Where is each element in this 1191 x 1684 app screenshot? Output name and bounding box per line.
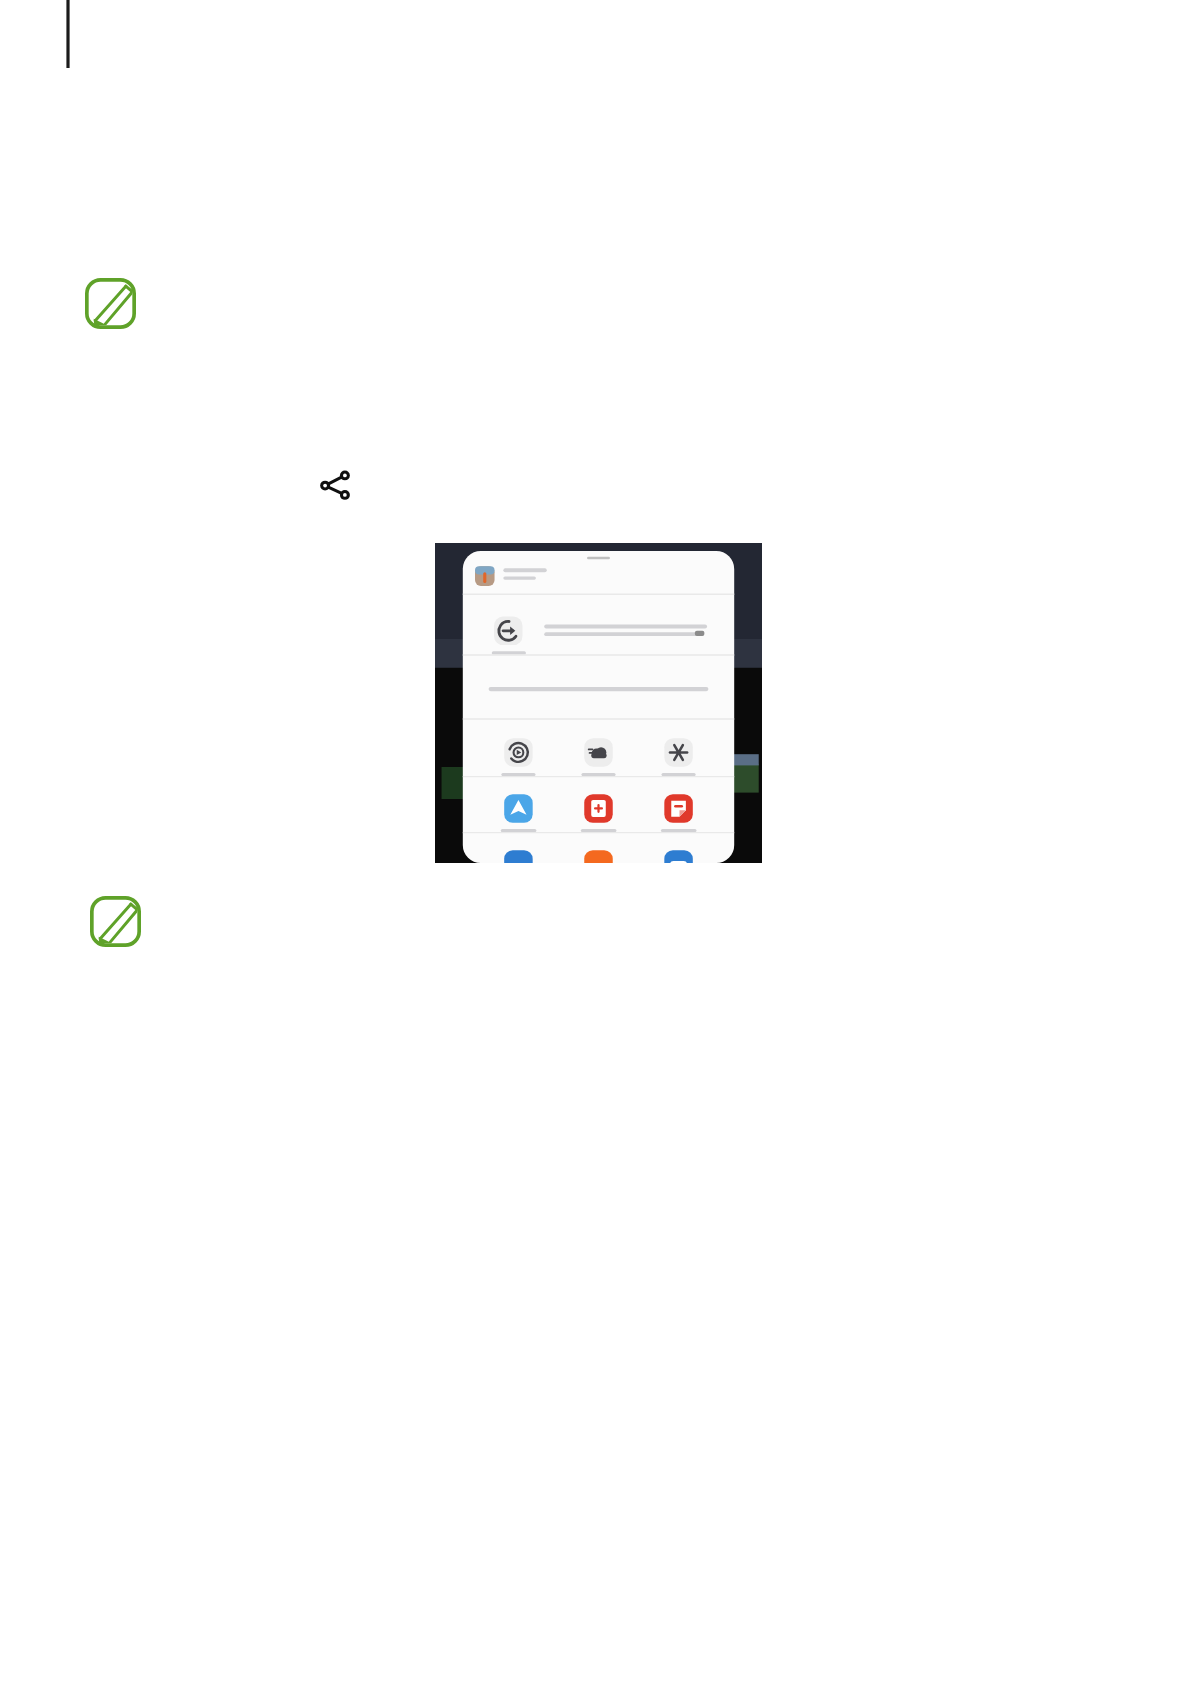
button[interactable]: Share [318, 468, 352, 502]
